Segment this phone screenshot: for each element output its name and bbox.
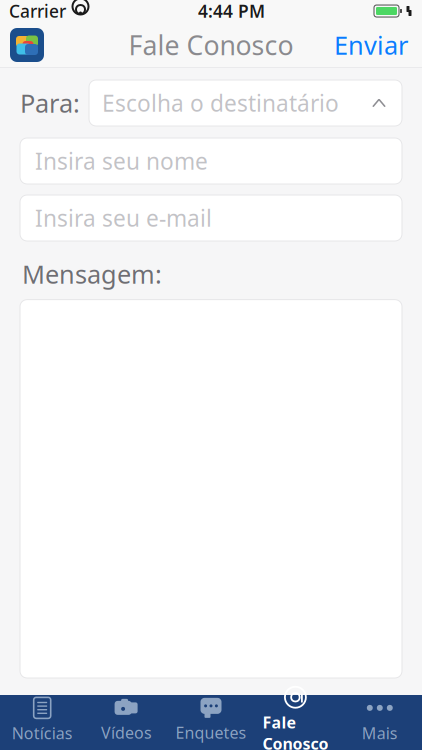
button[interactable]: Enviar <box>320 20 422 70</box>
staticText: Enquetes <box>175 722 246 743</box>
staticText: Fale Conosco <box>128 27 293 63</box>
staticText: Carrier <box>9 0 66 22</box>
staticText: Insira seu nome <box>35 146 208 176</box>
button[interactable]: Enquetes <box>169 695 253 750</box>
staticText: Notícias <box>12 722 73 744</box>
staticText: Mensagem: <box>22 257 162 291</box>
staticText: Para: <box>20 86 80 120</box>
button[interactable]: Fale Conosco <box>253 695 338 750</box>
button[interactable]: Notícias <box>0 695 84 750</box>
button[interactable]: Insira seu nome <box>20 138 402 184</box>
button[interactable]: Mais <box>338 695 422 750</box>
staticText: Enviar <box>334 28 408 62</box>
staticText: Mais <box>362 722 398 744</box>
button[interactable]: Vídeos <box>84 695 169 750</box>
staticText: Insira seu e-mail <box>35 203 212 233</box>
staticText: Escolha o destinatário <box>102 88 339 118</box>
staticText: 4:44 PM <box>198 0 265 22</box>
button[interactable]: Insira seu e-mail <box>20 195 402 241</box>
staticText: Fale Conosco <box>262 712 328 750</box>
staticText: Vídeos <box>101 722 152 743</box>
button[interactable]: Escolha o destinatário <box>89 80 402 126</box>
button[interactable]: App <box>0 24 54 66</box>
